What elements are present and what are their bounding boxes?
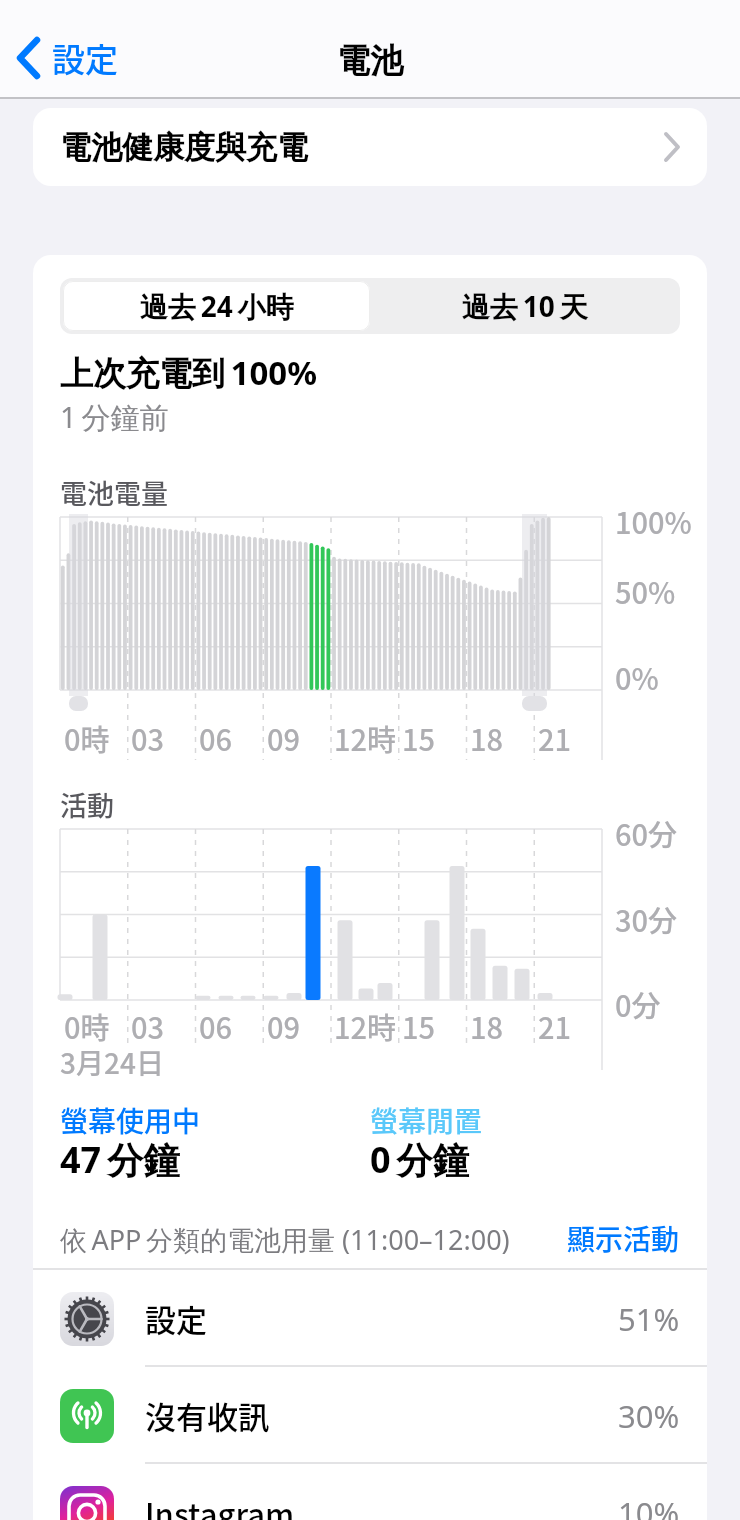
staticText: 30分 xyxy=(615,898,678,940)
staticText: 0% xyxy=(615,656,659,698)
staticText: 活動 xyxy=(60,785,114,824)
staticText: 12時 xyxy=(334,717,397,759)
staticText: 電池 xyxy=(337,40,403,82)
staticText: 03 xyxy=(131,717,165,759)
staticText: 21 xyxy=(538,1005,572,1047)
staticText: 51% xyxy=(618,1298,680,1340)
staticText: 0時 xyxy=(64,717,110,759)
staticText: 09 xyxy=(267,717,301,759)
staticText: 30% xyxy=(618,1395,680,1437)
staticText: 03 xyxy=(131,1005,165,1047)
staticText: 螢幕使用中 xyxy=(60,1100,201,1141)
staticText: 09 xyxy=(267,1005,301,1047)
staticText: 設定 xyxy=(52,34,118,82)
staticText: 0時 xyxy=(64,1005,110,1047)
button[interactable]: 顯示活動 xyxy=(480,1216,680,1260)
staticText: 沒有收訊 xyxy=(145,1393,269,1438)
staticText: 依 APP 分類的電池用量 (11:00–12:00) xyxy=(60,1221,510,1258)
staticText: 電池電量 xyxy=(60,473,168,512)
staticText: 10% xyxy=(618,1492,680,1520)
button[interactable]: 電池健康度與充電 xyxy=(33,108,707,186)
staticText: 21 xyxy=(538,717,572,759)
staticText: 1 分鐘前 xyxy=(60,397,169,437)
staticText: 50% xyxy=(615,570,676,612)
button[interactable]: 過去 10 天 xyxy=(370,278,680,334)
button[interactable]: 過去 24 小時 xyxy=(63,281,370,331)
staticText: 15 xyxy=(402,1005,436,1047)
staticText: 18 xyxy=(470,717,504,759)
staticText: 18 xyxy=(470,1005,504,1047)
staticText: 設定 xyxy=(145,1296,207,1341)
staticText: 60分 xyxy=(615,812,678,854)
staticText: 0分 xyxy=(615,983,661,1025)
staticText: 過去 24 小時 xyxy=(140,287,294,325)
staticText: 顯示活動 xyxy=(567,1218,680,1259)
button[interactable]: 沒有收訊 xyxy=(33,1367,707,1464)
staticText: 3月24日 xyxy=(60,1042,164,1083)
staticText: 06 xyxy=(199,717,233,759)
staticText: 100% xyxy=(615,500,692,542)
staticText: 12時 xyxy=(334,1005,397,1047)
staticText: Instagram xyxy=(145,1490,295,1520)
button[interactable]: 設定 xyxy=(33,1270,707,1367)
button[interactable]: 設定 xyxy=(16,34,118,82)
button[interactable]: Instagram xyxy=(33,1464,707,1520)
staticText: 06 xyxy=(199,1005,233,1047)
staticText: 電池健康度與充電 xyxy=(60,128,308,167)
staticText: 上次充電到 100% xyxy=(60,350,317,395)
staticText: 15 xyxy=(402,717,436,759)
staticText: 47 分鐘 xyxy=(60,1135,180,1184)
staticText: 過去 10 天 xyxy=(462,287,588,325)
staticText: 0 分鐘 xyxy=(370,1135,469,1184)
staticText: 螢幕閒置 xyxy=(370,1100,483,1141)
